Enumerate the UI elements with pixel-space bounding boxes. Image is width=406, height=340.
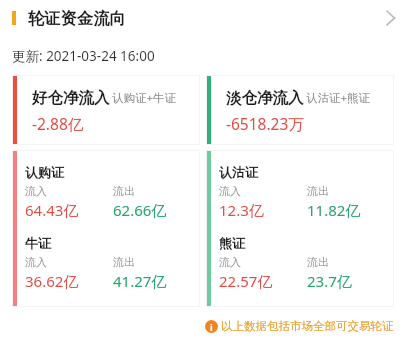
staticText: 流出 — [307, 255, 329, 269]
staticText: 认购证+牛证 — [112, 90, 177, 106]
button[interactable]: i — [205, 319, 394, 333]
button[interactable]: 认沽证 — [206, 150, 394, 307]
staticText: 62.66亿 — [113, 200, 167, 220]
button[interactable]: 轮证资金流向 — [0, 0, 406, 36]
staticText: 认购证 — [25, 164, 64, 180]
staticText: -6518.23万 — [226, 113, 304, 134]
staticText: 流出 — [307, 184, 329, 198]
staticText: 36.62亿 — [25, 271, 79, 291]
button[interactable]: 查看详情 — [379, 6, 403, 30]
staticText: 牛证 — [25, 235, 51, 251]
staticText: -2.88亿 — [32, 113, 84, 134]
staticText: 流入 — [25, 255, 47, 269]
staticText: 轮证资金流向 — [28, 8, 126, 29]
staticText: 23.7亿 — [307, 271, 352, 291]
staticText: 11.82亿 — [307, 200, 361, 220]
staticText: 熊证 — [219, 235, 245, 251]
staticText: 认沽证+熊证 — [306, 90, 371, 106]
staticText: 41.27亿 — [113, 271, 167, 291]
staticText: 流入 — [219, 184, 241, 198]
staticText: 流入 — [219, 255, 241, 269]
button[interactable]: 认购证 — [12, 150, 200, 307]
staticText: 流出 — [113, 255, 135, 269]
staticText: i — [210, 321, 213, 333]
button[interactable]: 好仓净流入 — [12, 75, 200, 145]
button[interactable]: 淡仓净流入 — [206, 75, 394, 145]
staticText: 22.57亿 — [219, 271, 273, 291]
staticText: 淡仓净流入 — [226, 88, 304, 108]
staticText: 更新: 2021-03-24 16:00 — [12, 47, 155, 65]
staticText: 以上数据包括市场全部可交易轮证 — [221, 319, 394, 333]
staticText: 64.43亿 — [25, 200, 79, 220]
staticText: 认沽证 — [219, 164, 258, 180]
staticText: 流入 — [25, 184, 47, 198]
staticText: 好仓净流入 — [32, 88, 110, 108]
staticText: 12.3亿 — [219, 200, 264, 220]
staticText: 流出 — [113, 184, 135, 198]
